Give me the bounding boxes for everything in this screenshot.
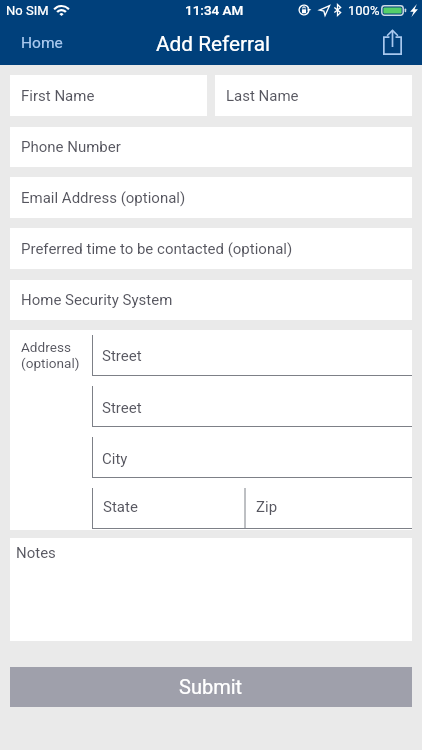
button[interactable]: Email Address (optional): [10, 177, 412, 218]
staticText: Street: [102, 347, 142, 365]
staticText: Home: [21, 34, 63, 52]
button[interactable]: Street: [92, 376, 412, 427]
button[interactable]: City: [92, 427, 412, 478]
staticText: No SIM: [6, 3, 49, 18]
staticText: Phone Number: [21, 138, 121, 156]
button[interactable]: First Name: [10, 75, 207, 116]
staticText: Address: [21, 339, 71, 355]
staticText: Submit: [179, 675, 243, 698]
staticText: (optional): [21, 355, 80, 371]
staticText: Last Name: [226, 87, 299, 105]
button[interactable]: Notes: [10, 538, 412, 641]
button[interactable]: Phone Number: [10, 127, 412, 167]
staticText: Add Referral: [156, 32, 271, 56]
staticText: Home Security System: [21, 291, 173, 309]
staticText: Zip: [256, 498, 278, 516]
button[interactable]: Home: [0, 20, 77, 65]
button[interactable]: Last Name: [215, 75, 412, 116]
button[interactable]: Submit: [10, 667, 412, 707]
button[interactable]: Home Security System: [10, 280, 412, 320]
button[interactable]: Zip: [245, 478, 412, 529]
button[interactable]: Preferred time to be contacted (optional…: [10, 228, 412, 269]
button[interactable]: Share: [369, 20, 422, 65]
staticText: Preferred time to be contacted (optional…: [21, 240, 293, 258]
button[interactable]: Street: [92, 330, 412, 376]
staticText: Notes: [16, 544, 56, 562]
staticText: Street: [102, 399, 142, 417]
staticText: First Name: [21, 87, 95, 105]
staticText: Email Address (optional): [21, 189, 186, 207]
button[interactable]: State: [92, 478, 245, 529]
staticText: State: [103, 498, 138, 516]
staticText: 100%: [348, 3, 380, 18]
staticText: City: [102, 450, 128, 468]
staticText: 11:34 AM: [185, 2, 244, 18]
